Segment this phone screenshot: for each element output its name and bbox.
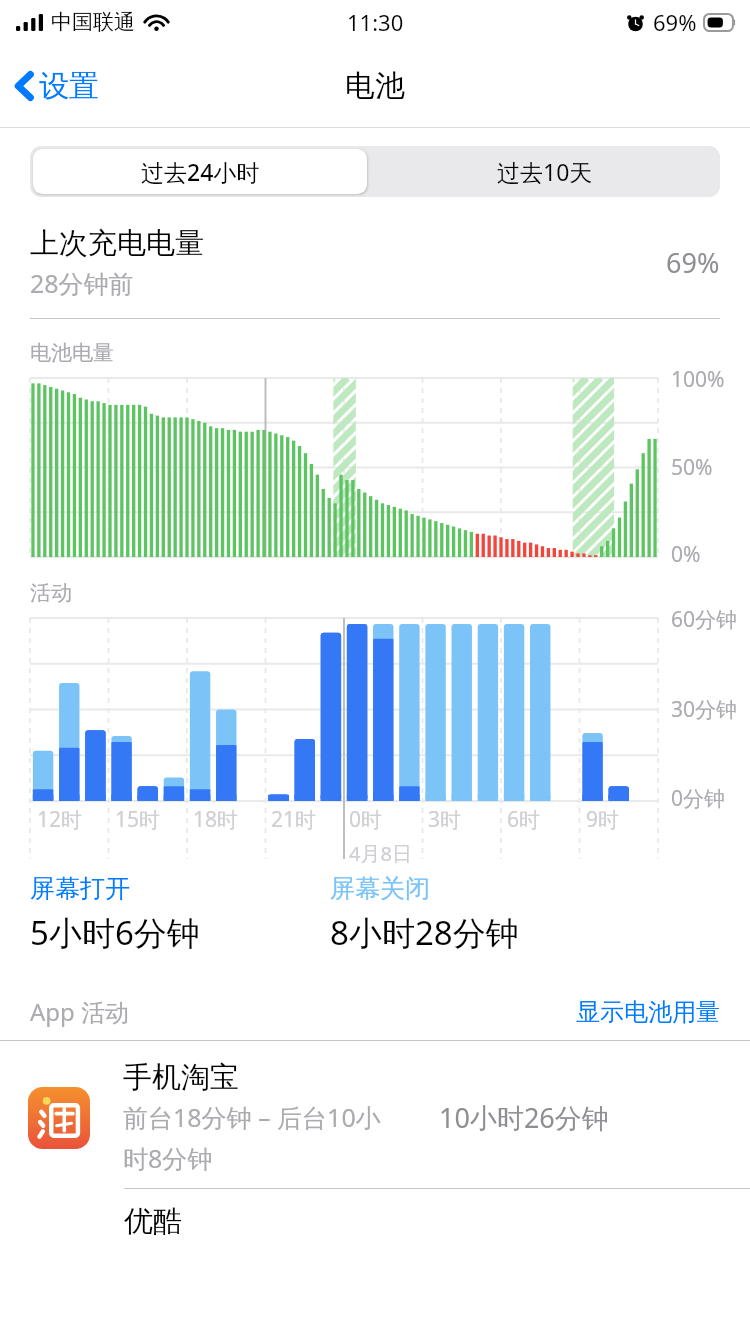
button[interactable]: 过去10天 <box>370 146 720 197</box>
staticText: App 活动 <box>30 995 576 1028</box>
staticText: 手机淘宝 <box>123 1059 239 1096</box>
button[interactable]: 显示电池用量 <box>576 997 720 1027</box>
staticText: 28分钟前 <box>30 266 134 300</box>
staticText: 过去10天 <box>497 156 593 187</box>
staticText: 21时 <box>271 805 317 834</box>
staticText: 前台18分钟 – 后台10小 时8分钟 <box>123 1100 381 1176</box>
staticText: 100% <box>671 365 725 394</box>
button[interactable]: 过去24小时 <box>33 149 367 194</box>
staticText: 9时 <box>586 805 620 834</box>
staticText: 过去24小时 <box>141 156 260 187</box>
staticText: 中国联通 <box>51 9 135 35</box>
staticText: 4月8日 <box>349 840 412 867</box>
staticText: 69% <box>653 7 697 37</box>
button[interactable]: 优酷 <box>0 1189 750 1240</box>
staticText: 优酷 <box>124 1203 182 1240</box>
button[interactable]: 屏幕关闭 <box>330 873 750 955</box>
staticText: 12时 <box>37 805 83 834</box>
staticText: 电池电量 <box>30 340 114 366</box>
staticText: 活动 <box>30 580 72 606</box>
staticText: 6时 <box>507 805 541 834</box>
staticText: 屏幕关闭 <box>330 873 430 904</box>
button[interactable]: 设置 <box>0 59 111 113</box>
staticText: 0分钟 <box>671 784 726 813</box>
staticText: 8小时28分钟 <box>330 910 519 955</box>
staticText: 10小时26分钟 <box>439 1099 609 1136</box>
staticText: 上次充电电量 <box>30 225 204 262</box>
staticText: 屏幕打开 <box>30 873 130 904</box>
staticText: 11:30 <box>347 7 404 37</box>
staticText: 3时 <box>428 805 462 834</box>
staticText: 60分钟 <box>671 605 738 634</box>
staticText: 0% <box>671 540 701 569</box>
staticText: 5小时6分钟 <box>30 910 200 955</box>
staticText: 设置 <box>39 67 99 105</box>
staticText: 电池 <box>345 67 405 105</box>
staticText: 显示电池用量 <box>576 997 720 1027</box>
button[interactable]: 上次充电电量 <box>0 225 750 300</box>
button[interactable]: 手机淘宝 <box>0 1041 750 1188</box>
staticText: 50% <box>671 453 713 482</box>
staticText: 0时 <box>349 805 383 834</box>
button[interactable]: 屏幕打开 <box>30 873 330 955</box>
staticText: 15时 <box>115 805 161 834</box>
staticText: 30分钟 <box>671 695 738 724</box>
staticText: 18时 <box>193 805 239 834</box>
staticText: 69% <box>666 244 720 281</box>
